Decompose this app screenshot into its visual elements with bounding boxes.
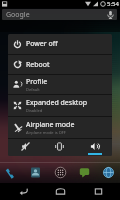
button[interactable]: Vibrate — [42, 139, 77, 156]
staticText: Airplane mode is OFF — [26, 130, 66, 135]
staticText: Power off — [26, 39, 58, 49]
button[interactable]: Power off — [8, 34, 112, 54]
staticText: Reboot — [26, 60, 50, 70]
button[interactable]: Profile — [8, 75, 112, 94]
staticText: Google — [6, 10, 30, 20]
button[interactable]: Expanded desktop — [8, 95, 112, 116]
staticText: Profile — [26, 77, 48, 87]
button[interactable]: Messaging — [75, 163, 94, 182]
button[interactable]: Sound on — [77, 139, 112, 156]
staticText: Disabled — [26, 108, 43, 113]
button[interactable]: Recents — [83, 183, 113, 200]
button[interactable]: Google — [2, 9, 117, 20]
other: Voice search — [106, 10, 115, 19]
button[interactable]: Back — [8, 183, 38, 200]
button[interactable]: Apps — [51, 163, 70, 182]
staticText: Default — [26, 87, 40, 92]
button[interactable]: Browser — [99, 163, 118, 182]
staticText: Expanded desktop — [26, 98, 87, 108]
staticText: 5:54 — [107, 0, 119, 8]
button[interactable]: Home — [45, 183, 75, 200]
button[interactable]: Airplane mode — [8, 117, 112, 138]
button[interactable]: People — [26, 163, 45, 182]
staticText: Airplane mode — [26, 120, 75, 130]
button[interactable]: Silent — [8, 139, 42, 156]
button[interactable]: Phone — [2, 163, 21, 182]
button[interactable]: Reboot — [8, 55, 112, 74]
